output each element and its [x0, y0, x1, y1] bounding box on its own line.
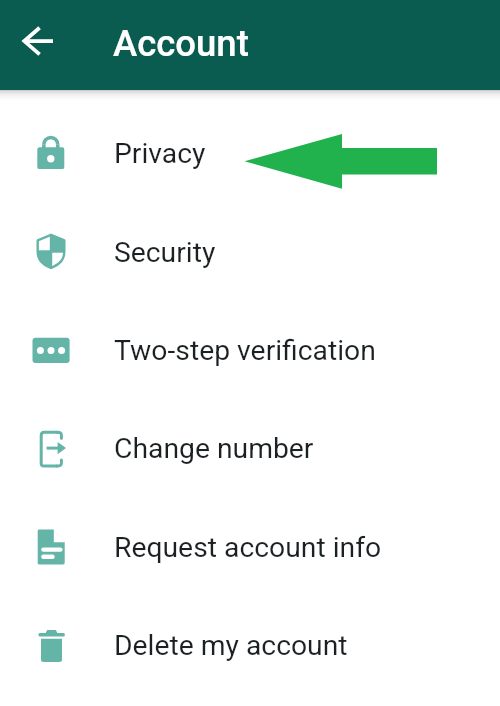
staticText: Security: [114, 236, 216, 269]
staticText: Request account info: [114, 531, 382, 564]
button[interactable]: Security: [0, 203, 500, 301]
staticText: Privacy: [114, 137, 206, 170]
button[interactable]: Back: [11, 15, 63, 67]
staticText: Change number: [114, 432, 314, 465]
button[interactable]: Request account info: [0, 498, 500, 596]
button[interactable]: Change number: [0, 399, 500, 497]
button[interactable]: Delete my account: [0, 596, 500, 694]
staticText: Delete my account: [114, 629, 348, 662]
staticText: Two-step verification: [114, 334, 376, 367]
button[interactable]: Privacy: [0, 104, 500, 202]
staticText: Account: [113, 22, 249, 65]
button[interactable]: Two-step verification: [0, 301, 500, 399]
